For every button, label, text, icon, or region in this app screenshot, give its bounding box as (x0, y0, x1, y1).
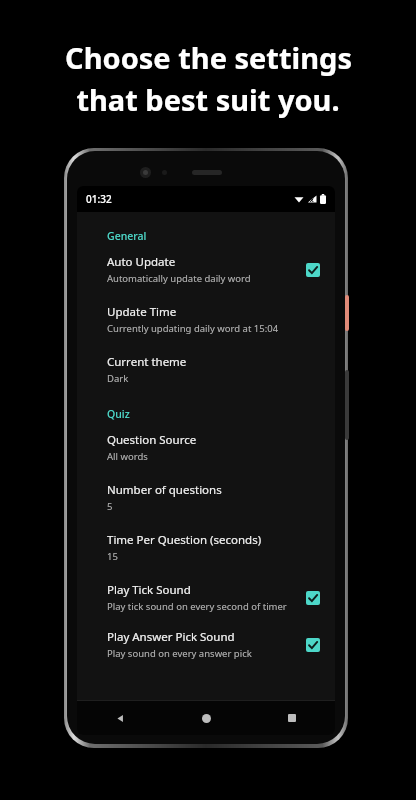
button[interactable]: Toggle Play Tick Sound (303, 588, 323, 608)
staticText: Play tick sound on every second of timer (107, 600, 287, 613)
button[interactable]: Toggle Play Answer Pick Sound (303, 635, 323, 655)
staticText: Automatically update daily word (107, 272, 251, 285)
button[interactable]: Update Time (77, 304, 335, 335)
button[interactable]: Home (163, 701, 249, 735)
staticText: Question Source (107, 432, 197, 448)
staticText: Time Per Question (seconds) (107, 532, 262, 548)
staticText: Play Answer Pick Sound (107, 629, 235, 645)
button[interactable]: Question Source (77, 432, 335, 463)
button[interactable]: Recent apps (249, 701, 335, 735)
staticText: that best suit you. (76, 80, 340, 119)
staticText: Play Tick Sound (107, 582, 191, 598)
button[interactable]: Current theme (77, 354, 335, 385)
staticText: Play sound on every answer pick (107, 647, 252, 660)
button[interactable]: Number of questions (77, 482, 335, 513)
staticText: Auto Update (107, 254, 176, 270)
button[interactable]: Play Tick Sound (77, 582, 335, 613)
staticText: All words (107, 450, 148, 463)
staticText: Choose the settings (65, 38, 352, 77)
staticText: 01:32 (86, 192, 112, 206)
button[interactable]: Auto Update (77, 254, 335, 285)
staticText: Quiz (107, 407, 130, 421)
staticText: 5 (107, 500, 113, 513)
button[interactable]: Play Answer Pick Sound (77, 629, 335, 660)
staticText: Update Time (107, 304, 177, 320)
staticText: Dark (107, 372, 129, 385)
button[interactable]: Toggle Auto Update (303, 260, 323, 280)
button[interactable]: Back (77, 701, 163, 735)
button[interactable]: Time Per Question (seconds) (77, 532, 335, 563)
staticText: Current theme (107, 354, 187, 370)
staticText: General (107, 229, 147, 243)
staticText: 15 (107, 550, 118, 563)
staticText: Currently updating daily word at 15:04 (107, 322, 279, 335)
staticText: Number of questions (107, 482, 222, 498)
